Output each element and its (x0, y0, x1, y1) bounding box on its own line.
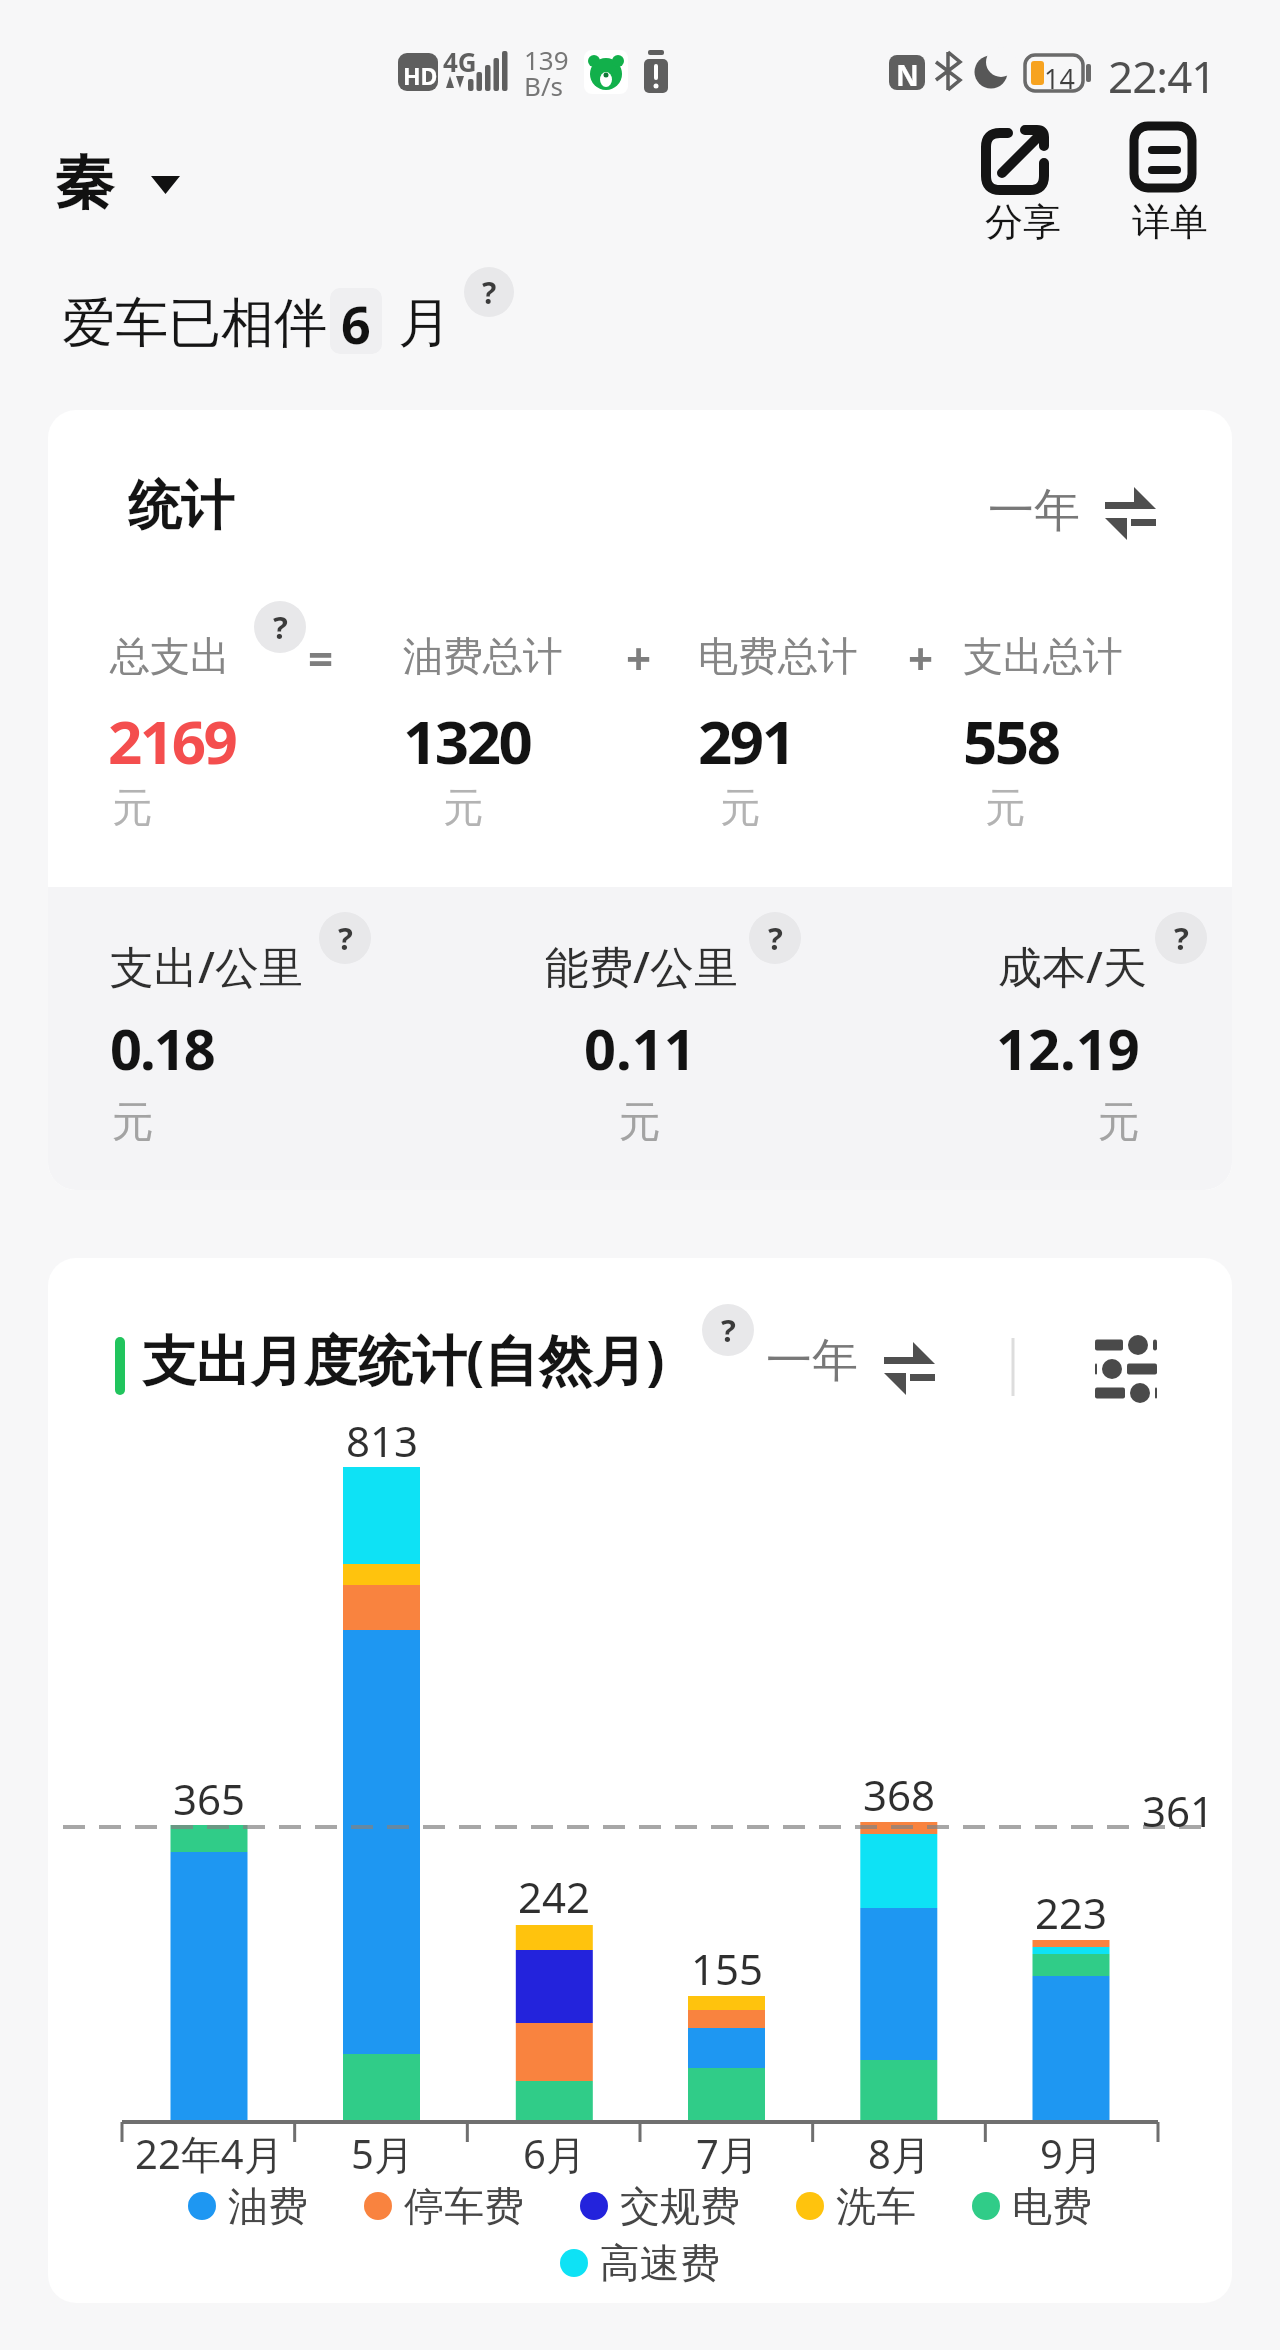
staticText: 油费 (228, 2181, 308, 2231)
button[interactable] (1078, 1335, 1170, 1405)
staticText: 6 (341, 288, 371, 354)
button[interactable] (965, 115, 1065, 250)
staticText: + (626, 628, 652, 688)
staticText: 元 (985, 782, 1025, 832)
staticText: ? (482, 272, 497, 313)
staticText: 元 (112, 782, 152, 832)
staticText: 4G (443, 44, 477, 79)
staticText: 14 (1044, 60, 1075, 97)
staticText: 秦 (54, 145, 114, 221)
staticText: ? (768, 917, 783, 959)
staticText: ? (338, 917, 353, 959)
staticText: 支出/公里 (110, 936, 303, 996)
staticText: 0.18 (110, 1010, 214, 1086)
staticText: 558 (963, 700, 1059, 782)
staticText: 详单 (1132, 198, 1208, 246)
staticText: 总支出 (110, 631, 230, 681)
staticText: ? (273, 606, 288, 648)
staticText: 洗车 (836, 2181, 916, 2231)
staticText: 223 (1035, 1884, 1108, 1941)
staticText: 一年 (766, 1332, 858, 1390)
staticText: ? (1174, 917, 1189, 959)
staticText: 元 (619, 1096, 661, 1149)
staticText: 361 (1142, 1782, 1215, 1839)
staticText: 支出月度统计(自然月) (142, 1322, 665, 1396)
staticText: 成本/天 (998, 936, 1147, 996)
staticText: 支出总计 (963, 631, 1123, 681)
staticText: 291 (698, 700, 794, 782)
staticText: + (908, 628, 934, 688)
staticText: 8月 (868, 2126, 931, 2181)
staticText: ? (721, 1309, 736, 1351)
button[interactable]: 交规费 (580, 2181, 740, 2231)
staticText: 能费/公里 (545, 936, 738, 996)
staticText: 242 (518, 1868, 591, 1925)
button[interactable]: 高速费 (560, 2238, 720, 2288)
staticText: 元 (112, 1096, 154, 1149)
staticText: 365 (173, 1770, 246, 1827)
staticText: 12.19 (996, 1010, 1140, 1086)
staticText: 停车费 (404, 2181, 524, 2231)
button[interactable]: 洗车 (796, 2181, 916, 2231)
button[interactable] (975, 475, 1165, 555)
staticText: B/s (524, 68, 564, 103)
button[interactable]: 停车费 (364, 2181, 524, 2231)
staticText: HD (403, 60, 438, 91)
staticText: 368 (863, 1766, 936, 1823)
staticText: 1320 (403, 700, 531, 782)
staticText: 油费总计 (403, 631, 563, 681)
staticText: 高速费 (600, 2238, 720, 2288)
button[interactable]: ? (254, 601, 306, 653)
staticText: 爱车已相伴 (62, 290, 327, 357)
staticText: 5月 (351, 2126, 414, 2181)
staticText: 交规费 (620, 2181, 740, 2231)
button[interactable]: ? (749, 912, 801, 964)
staticText: 月 (398, 290, 451, 357)
staticText: 元 (443, 782, 483, 832)
staticText: 6月 (523, 2126, 586, 2181)
button[interactable]: 油费 (188, 2181, 308, 2231)
staticText: 0.11 (584, 1010, 696, 1086)
staticText: 7月 (696, 2126, 759, 2181)
button[interactable]: ? (1155, 912, 1207, 964)
staticText: 一年 (988, 482, 1080, 540)
button[interactable]: ? (319, 912, 371, 964)
staticText: 22:41 (1108, 46, 1216, 106)
staticText: 2169 (108, 700, 236, 782)
button[interactable]: ? (464, 267, 514, 317)
button[interactable] (40, 130, 200, 230)
staticText: = (308, 628, 334, 688)
staticText: 分享 (985, 198, 1061, 246)
button[interactable]: ? (702, 1304, 754, 1356)
staticText: 155 (691, 1940, 764, 1997)
staticText: 139 (524, 42, 569, 77)
staticText: 元 (1098, 1096, 1140, 1149)
button[interactable]: 电费 (972, 2181, 1092, 2231)
staticText: 22年4月 (135, 2126, 284, 2181)
staticText: 电费总计 (698, 631, 858, 681)
button[interactable] (1120, 115, 1220, 250)
staticText: 813 (346, 1412, 419, 1469)
button[interactable] (755, 1325, 945, 1405)
staticText: 统计 (128, 473, 234, 540)
staticText: 9月 (1040, 2126, 1103, 2181)
staticText: N (896, 56, 919, 94)
staticText: 电费 (1012, 2181, 1092, 2231)
staticText: 元 (720, 782, 760, 832)
